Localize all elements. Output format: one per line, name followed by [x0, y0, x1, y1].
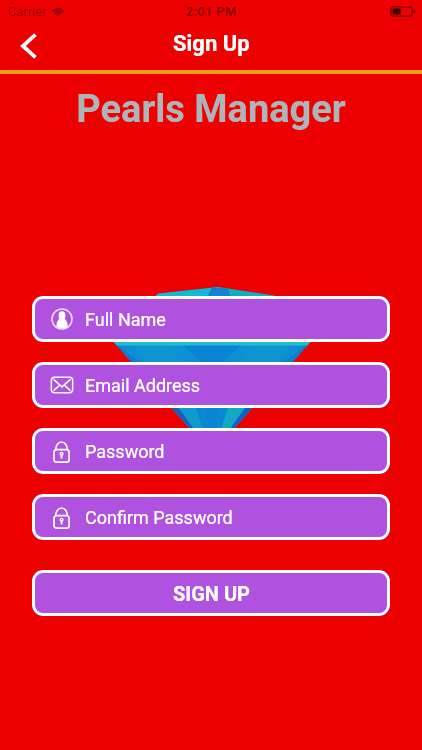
staticText: Full Name: [85, 309, 166, 330]
staticText: Email Address: [85, 375, 201, 396]
staticText: Sign Up: [173, 31, 250, 57]
staticText: Password: [85, 441, 165, 462]
staticText: SIGN UP: [173, 582, 250, 605]
staticText: Carrier: [8, 4, 47, 19]
button[interactable]: Password: [32, 428, 390, 474]
button[interactable]: SIGN UP: [32, 570, 390, 616]
staticText: 2:01 PM: [186, 3, 237, 19]
button[interactable]: Confirm Password: [32, 494, 390, 540]
staticText: Confirm Password: [85, 507, 233, 528]
button[interactable]: Full Name: [32, 296, 390, 342]
button[interactable]: Back: [6, 24, 50, 68]
button[interactable]: Email Address: [32, 362, 390, 408]
staticText: Pearls Manager: [0, 87, 422, 132]
